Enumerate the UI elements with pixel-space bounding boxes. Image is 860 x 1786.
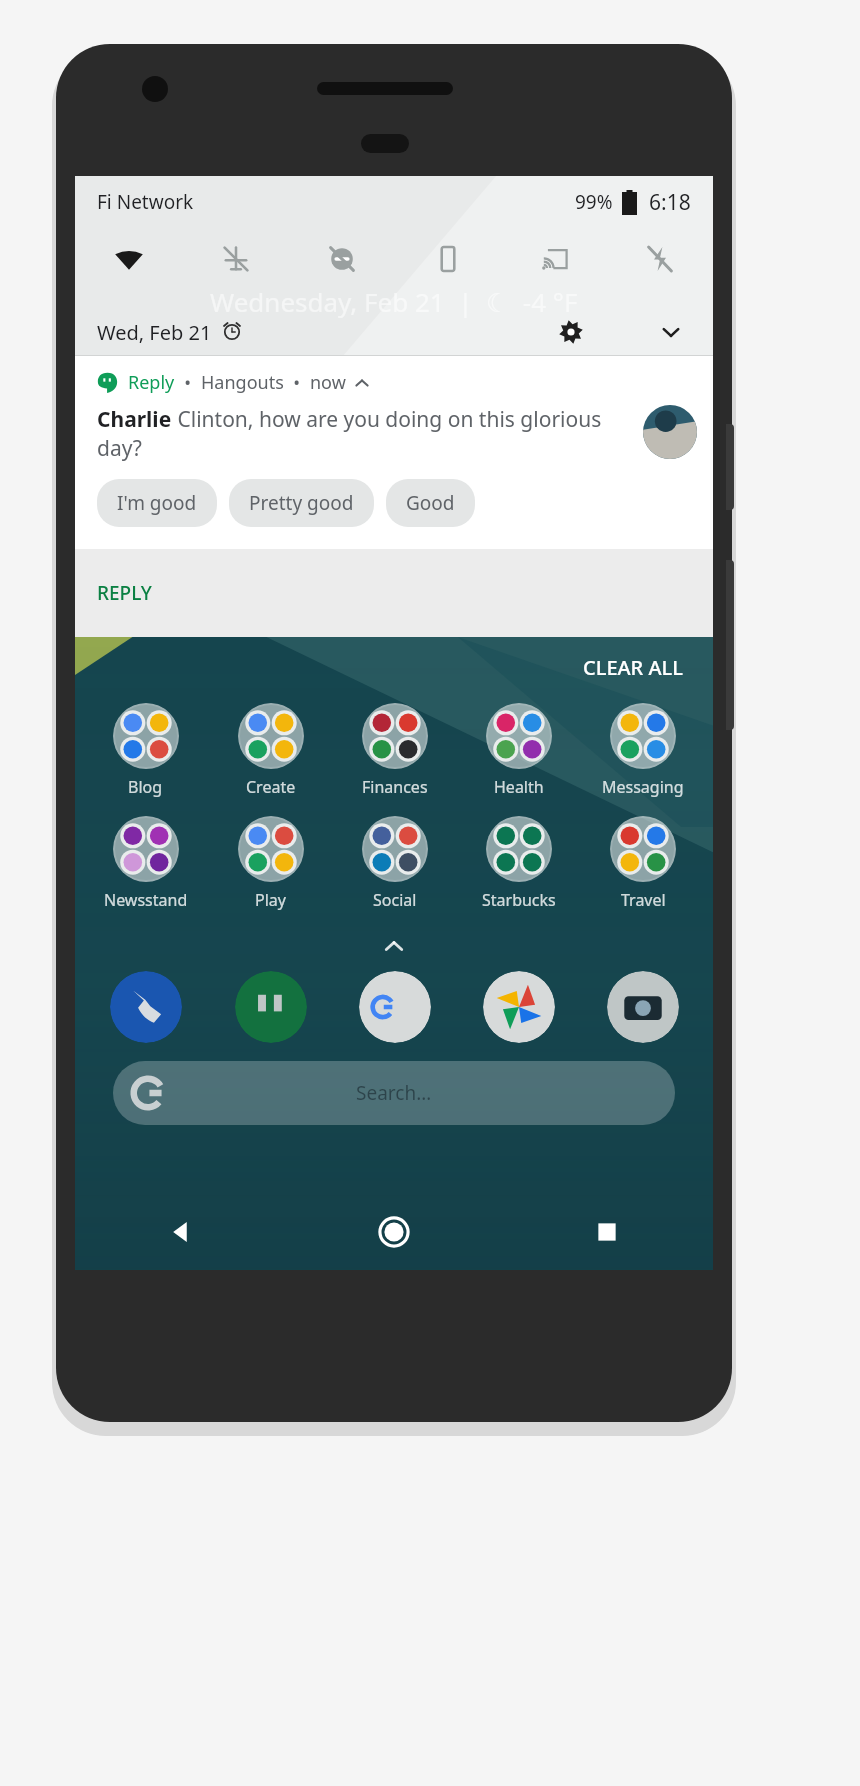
staticText: • bbox=[284, 370, 310, 395]
staticText: REPLY bbox=[97, 580, 152, 606]
staticText: Newsstand bbox=[104, 889, 188, 911]
staticText: Play bbox=[255, 889, 286, 911]
button[interactable]: Hangouts bbox=[208, 971, 333, 1043]
staticText: I'm good bbox=[117, 490, 197, 516]
button[interactable]: Newsstand bbox=[83, 816, 208, 911]
button[interactable]: Quick setting bbox=[395, 228, 501, 290]
button[interactable]: Recents bbox=[500, 1194, 713, 1270]
button[interactable]: Quick setting bbox=[289, 228, 395, 290]
staticText: Wednesday, Feb 21 | ☾ -4 °F bbox=[210, 284, 578, 319]
staticText: Fi Network bbox=[97, 189, 194, 215]
button[interactable]: Pretty good bbox=[229, 479, 374, 527]
staticText: now bbox=[310, 370, 346, 395]
staticText: Travel bbox=[621, 889, 666, 911]
button[interactable]: Starbucks bbox=[457, 816, 581, 911]
staticText: Finances bbox=[362, 776, 428, 798]
button[interactable]: Camera bbox=[581, 971, 705, 1043]
button[interactable]: Quick setting bbox=[501, 228, 607, 290]
staticText: 99% bbox=[575, 189, 613, 215]
staticText: day? bbox=[97, 434, 142, 463]
button[interactable]: Google Pay bbox=[333, 971, 457, 1043]
staticText: Create bbox=[246, 776, 296, 798]
staticText: Starbucks bbox=[482, 889, 556, 911]
staticText: Charlie bbox=[97, 405, 172, 434]
staticText: Search… bbox=[356, 1080, 432, 1106]
button[interactable]: Quick setting bbox=[607, 228, 713, 290]
button[interactable]: Finances bbox=[333, 703, 457, 798]
button[interactable]: Expand bbox=[651, 312, 691, 352]
staticText: CLEAR ALL bbox=[583, 654, 683, 681]
staticText: Social bbox=[373, 889, 417, 911]
staticText: Wed, Feb 21 bbox=[97, 319, 212, 346]
staticText: 6:18 bbox=[649, 188, 691, 217]
button[interactable]: Play bbox=[208, 816, 333, 911]
button[interactable]: CLEAR ALL bbox=[75, 637, 713, 697]
button[interactable]: Settings bbox=[551, 312, 591, 352]
button[interactable]: Reply bbox=[75, 356, 713, 549]
staticText: • bbox=[175, 370, 201, 395]
button[interactable]: I'm good bbox=[97, 479, 217, 527]
button[interactable]: Create bbox=[208, 703, 333, 798]
staticText: Pretty good bbox=[249, 490, 354, 516]
staticText: Messaging bbox=[602, 776, 684, 798]
staticText: Good bbox=[406, 490, 455, 516]
button[interactable]: Open app drawer bbox=[375, 927, 413, 965]
button[interactable]: Back bbox=[75, 1194, 287, 1270]
button[interactable]: Home bbox=[287, 1194, 500, 1270]
button[interactable]: Social bbox=[333, 816, 457, 911]
button[interactable]: Phone bbox=[83, 971, 208, 1043]
button[interactable]: Messaging bbox=[581, 703, 705, 798]
button[interactable]: Search… bbox=[113, 1061, 675, 1125]
button[interactable]: Travel bbox=[581, 816, 705, 911]
button[interactable]: Quick setting bbox=[182, 228, 289, 290]
button[interactable]: Good bbox=[386, 479, 475, 527]
button[interactable]: REPLY bbox=[75, 549, 713, 637]
staticText: Health bbox=[494, 776, 544, 798]
button[interactable]: Quick setting bbox=[75, 228, 182, 290]
button[interactable]: Blog bbox=[83, 703, 208, 798]
staticText: Hangouts bbox=[201, 370, 284, 395]
button[interactable]: Photos bbox=[457, 971, 581, 1043]
staticText: Blog bbox=[128, 776, 163, 798]
staticText: Reply bbox=[128, 370, 175, 395]
button[interactable]: Health bbox=[457, 703, 581, 798]
staticText: Clinton, how are you doing on this glori… bbox=[172, 405, 602, 434]
